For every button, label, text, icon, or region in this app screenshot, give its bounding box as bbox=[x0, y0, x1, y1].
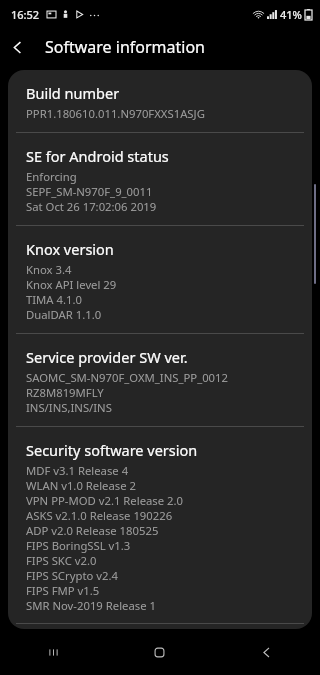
staticText: FIPS SKC v2.0 bbox=[26, 553, 97, 568]
button[interactable]: Home bbox=[106, 629, 213, 675]
button[interactable]: Back bbox=[213, 629, 320, 675]
button[interactable]: SE for Android status bbox=[8, 133, 312, 226]
button[interactable]: Build number bbox=[8, 70, 312, 133]
staticText: 16:52 bbox=[11, 7, 40, 22]
staticText: SMR Nov-2019 Release 1 bbox=[26, 598, 156, 613]
staticText: FIPS BoringSSL v1.3 bbox=[26, 538, 131, 553]
staticText: 41% bbox=[280, 7, 302, 22]
staticText: Software information bbox=[45, 36, 205, 58]
button[interactable]: Back bbox=[0, 30, 34, 64]
staticText: Knox API level 29 bbox=[26, 277, 117, 292]
staticText: Build number bbox=[26, 83, 120, 103]
staticText: Security software version bbox=[26, 440, 198, 460]
staticText: Sat Oct 26 17:02:06 2019 bbox=[26, 199, 157, 214]
staticText: SAOMC_SM-N970F_OXM_INS_PP_0012 bbox=[26, 370, 229, 385]
staticText: Knox version bbox=[26, 239, 114, 259]
button[interactable]: Recents bbox=[0, 629, 106, 675]
staticText: FIPS FMP v1.5 bbox=[26, 583, 100, 598]
staticText: RZ8M819MFLY bbox=[26, 385, 104, 400]
button[interactable]: Security software version bbox=[8, 427, 312, 624]
staticText: FIPS SCrypto v2.4 bbox=[26, 568, 118, 583]
staticText: VPN PP-MOD v2.1 Release 2.0 bbox=[26, 493, 184, 508]
staticText: DualDAR 1.1.0 bbox=[26, 307, 102, 322]
button[interactable]: Service provider SW ver. bbox=[8, 334, 312, 427]
staticText: Knox 3.4 bbox=[26, 262, 72, 277]
staticText: SEPF_SM-N970F_9_0011 bbox=[26, 184, 153, 199]
staticText: TIMA 4.1.0 bbox=[26, 292, 82, 307]
staticText: INS/INS,INS/INS bbox=[26, 400, 112, 415]
staticText: SE for Android status bbox=[26, 146, 169, 166]
staticText: PPR1.180610.011.N970FXXS1ASJG bbox=[26, 106, 205, 121]
staticText: WLAN v1.0 Release 2 bbox=[26, 478, 136, 493]
staticText: MDF v3.1 Release 4 bbox=[26, 463, 129, 478]
button[interactable]: Knox version bbox=[8, 226, 312, 334]
button[interactable]: Android security patch level bbox=[8, 624, 312, 629]
staticText: ADP v2.0 Release 180525 bbox=[26, 523, 159, 538]
staticText: Enforcing bbox=[26, 169, 77, 184]
staticText: ASKS v2.1.0 Release 190226 bbox=[26, 508, 173, 523]
staticText: Service provider SW ver. bbox=[26, 347, 188, 367]
